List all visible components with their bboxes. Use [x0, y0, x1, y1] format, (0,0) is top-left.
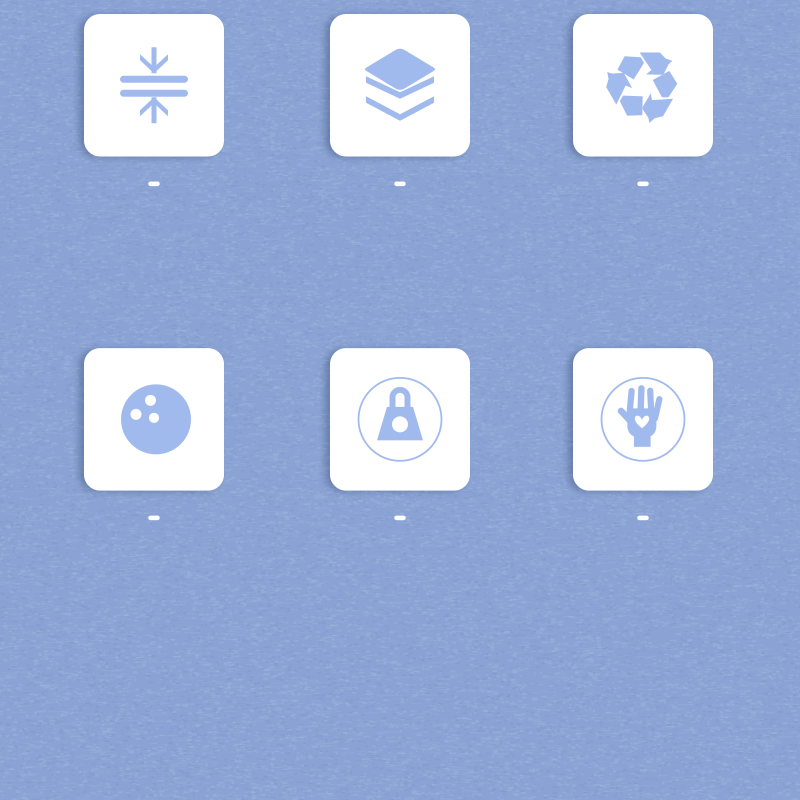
- button[interactable]: Weight: [330, 348, 470, 520]
- button[interactable]: Recycle: [573, 14, 713, 186]
- button[interactable]: Volunteer: [573, 348, 713, 520]
- button[interactable]: Compress: [84, 14, 224, 186]
- button[interactable]: Bowling: [84, 348, 224, 520]
- button[interactable]: Layers: [330, 14, 470, 186]
